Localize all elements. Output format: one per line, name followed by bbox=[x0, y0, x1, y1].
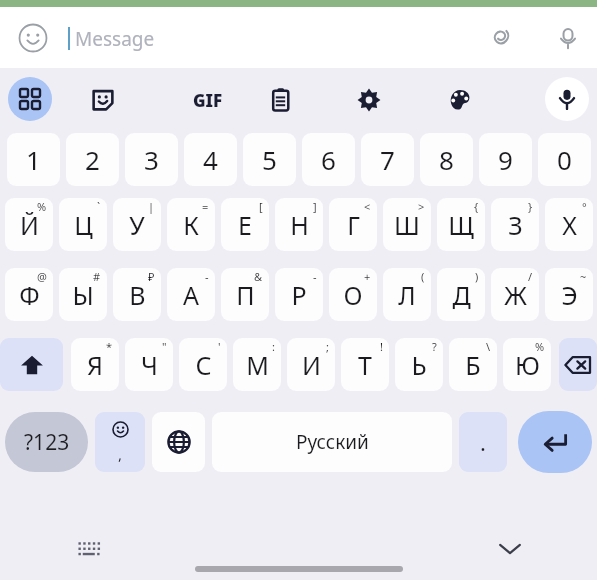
button[interactable]: ?123 bbox=[5, 412, 88, 472]
staticText: В bbox=[129, 278, 146, 312]
button[interactable]: 6 bbox=[302, 133, 355, 186]
staticText: У bbox=[129, 208, 145, 242]
button[interactable]: А bbox=[167, 268, 215, 321]
button[interactable]: Э bbox=[545, 268, 593, 321]
staticText: Р bbox=[291, 278, 307, 312]
button[interactable]: Щ bbox=[437, 198, 485, 251]
button[interactable]: Voice message bbox=[552, 22, 584, 54]
staticText: Б bbox=[465, 348, 481, 382]
button[interactable]: М bbox=[233, 338, 281, 391]
button[interactable]: Ф bbox=[5, 268, 53, 321]
staticText: Ь bbox=[411, 348, 427, 382]
staticText: 5 bbox=[262, 142, 277, 177]
button[interactable]: Т bbox=[341, 338, 389, 391]
button[interactable]: Voice input bbox=[545, 77, 589, 121]
button[interactable]: Д bbox=[437, 268, 485, 321]
staticText: ( bbox=[421, 269, 425, 284]
staticText: ; bbox=[326, 339, 329, 354]
button[interactable]: У bbox=[113, 198, 161, 251]
button[interactable]: Й bbox=[5, 198, 53, 251]
button[interactable]: Keyboard tool bbox=[88, 85, 118, 115]
staticText: " bbox=[162, 339, 167, 354]
button[interactable]: Hide keyboard layout bbox=[72, 532, 106, 566]
button[interactable]: Ю bbox=[503, 338, 551, 391]
staticText: @ bbox=[37, 269, 47, 284]
staticText: П bbox=[236, 278, 255, 312]
staticText: % bbox=[535, 339, 545, 354]
staticText: < bbox=[364, 199, 371, 214]
staticText: М bbox=[246, 348, 269, 382]
staticText: Русский bbox=[296, 429, 369, 455]
button[interactable]: Keyboard tool bbox=[354, 85, 384, 115]
staticText: Е bbox=[238, 208, 252, 242]
button[interactable]: Apps bbox=[8, 77, 52, 121]
button[interactable]: Ш bbox=[383, 198, 431, 251]
button[interactable]: 2 bbox=[66, 133, 119, 186]
button[interactable]: Ы bbox=[59, 268, 107, 321]
staticText: 8 bbox=[439, 142, 454, 177]
button[interactable]: Русский bbox=[212, 412, 452, 472]
button[interactable]: Shift bbox=[0, 338, 63, 391]
button[interactable]: Emoji bbox=[18, 23, 48, 53]
button[interactable]: 0 bbox=[538, 133, 591, 186]
button[interactable]: Keyboard tool bbox=[266, 85, 296, 115]
staticText: ° bbox=[582, 199, 587, 214]
button[interactable]: Keyboard tool bbox=[445, 85, 475, 115]
staticText: 1 bbox=[26, 142, 41, 177]
button[interactable]: Change language bbox=[152, 412, 205, 472]
button[interactable]: Attach bbox=[484, 22, 516, 54]
button[interactable]: GIF bbox=[186, 88, 230, 112]
button[interactable]: Ц bbox=[59, 198, 107, 251]
staticText: И bbox=[302, 348, 321, 382]
staticText: Х bbox=[562, 208, 577, 242]
staticText: . bbox=[480, 427, 486, 457]
staticText: Ч bbox=[141, 348, 158, 382]
button[interactable]: 9 bbox=[479, 133, 532, 186]
button[interactable]: 3 bbox=[125, 133, 178, 186]
staticText: 3 bbox=[144, 142, 159, 177]
staticText: Ы bbox=[72, 278, 94, 312]
staticText: Й bbox=[20, 208, 39, 242]
staticText: GIF bbox=[193, 89, 223, 112]
button[interactable]: Х bbox=[545, 198, 593, 251]
button[interactable]: Hide keyboard bbox=[492, 530, 528, 566]
button[interactable]: 1 bbox=[7, 133, 60, 186]
staticText: * bbox=[106, 339, 113, 354]
staticText: 6 bbox=[321, 142, 336, 177]
button[interactable]: Г bbox=[329, 198, 377, 251]
staticText: Д bbox=[452, 278, 471, 312]
button[interactable]: 8 bbox=[420, 133, 473, 186]
button[interactable]: Л bbox=[383, 268, 431, 321]
button[interactable]: Enter bbox=[518, 411, 592, 473]
button[interactable]: С bbox=[179, 338, 227, 391]
staticText: Н bbox=[290, 208, 309, 242]
button[interactable]: Б bbox=[449, 338, 497, 391]
staticText: ` bbox=[97, 199, 101, 214]
staticText: ₽ bbox=[148, 269, 155, 284]
button[interactable]: Emoji and comma bbox=[95, 412, 145, 472]
button[interactable]: 5 bbox=[243, 133, 296, 186]
button[interactable]: Ч bbox=[125, 338, 173, 391]
staticText: = bbox=[202, 199, 209, 214]
button[interactable]: 4 bbox=[184, 133, 237, 186]
button[interactable]: В bbox=[113, 268, 161, 321]
staticText: ?123 bbox=[24, 428, 70, 457]
button[interactable]: Ь bbox=[395, 338, 443, 391]
staticText: + bbox=[364, 269, 371, 284]
staticText: & bbox=[254, 269, 263, 284]
button[interactable]: И bbox=[287, 338, 335, 391]
button[interactable]: О bbox=[329, 268, 377, 321]
button[interactable]: З bbox=[491, 198, 539, 251]
button[interactable]: Backspace bbox=[559, 338, 597, 391]
button[interactable]: 7 bbox=[361, 133, 414, 186]
button[interactable]: Ж bbox=[491, 268, 539, 321]
button[interactable]: Е bbox=[221, 198, 269, 251]
staticText: К bbox=[183, 208, 199, 242]
button[interactable]: Я bbox=[71, 338, 119, 391]
staticText: # bbox=[93, 269, 101, 284]
button[interactable]: Н bbox=[275, 198, 323, 251]
button[interactable]: П bbox=[221, 268, 269, 321]
button[interactable]: К bbox=[167, 198, 215, 251]
button[interactable]: Р bbox=[275, 268, 323, 321]
button[interactable]: . bbox=[459, 412, 507, 472]
